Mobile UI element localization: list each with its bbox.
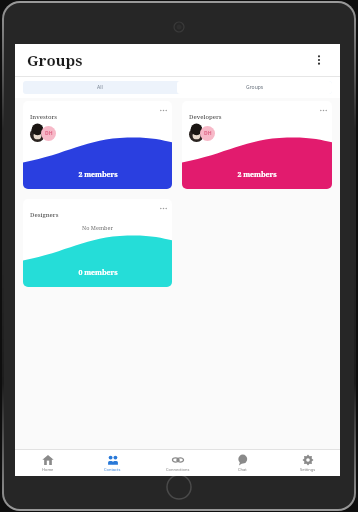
button[interactable]: Contacts	[80, 450, 145, 476]
button[interactable]: Card menu	[317, 104, 329, 116]
button[interactable]: Groups	[177, 81, 332, 94]
staticText: Groups	[246, 84, 264, 91]
staticText: DH	[45, 130, 53, 137]
staticText: No Member	[82, 224, 114, 231]
button[interactable]: More options	[308, 49, 330, 71]
staticText: DH	[204, 130, 212, 137]
button[interactable]: Card menu	[23, 101, 172, 189]
staticText: Investors	[30, 113, 58, 121]
staticText: Groups	[27, 50, 83, 70]
staticText: 0 members	[78, 268, 118, 278]
staticText: Chat	[238, 467, 247, 472]
staticText: Developers	[189, 113, 222, 121]
button[interactable]: Home	[15, 450, 80, 476]
button[interactable]: Connections	[145, 450, 210, 476]
staticText: Home	[42, 467, 54, 472]
button[interactable]: Settings	[275, 450, 340, 476]
staticText: Contacts	[104, 467, 121, 472]
staticText: 2 members	[237, 170, 277, 180]
staticText: All	[97, 84, 103, 91]
staticText: Connections	[166, 467, 190, 472]
button[interactable]: Card menu	[157, 104, 169, 116]
button[interactable]: Card menu	[23, 199, 172, 287]
staticText: Settings	[300, 467, 316, 472]
button[interactable]: Chat	[210, 450, 275, 476]
button[interactable]: Card menu	[182, 101, 332, 189]
staticText: Designers	[30, 211, 59, 219]
button[interactable]: Card menu	[157, 202, 169, 214]
staticText: 2 members	[78, 170, 118, 180]
button[interactable]: All	[23, 81, 177, 94]
